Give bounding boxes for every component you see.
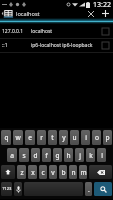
- button[interactable]: c: [39, 165, 47, 179]
- button[interactable]: u: [70, 130, 79, 145]
- button[interactable]: Shift: [1, 165, 15, 179]
- button[interactable]: Search: [94, 182, 112, 196]
- button[interactable]: w: [13, 130, 23, 145]
- button[interactable]: e: [25, 130, 35, 145]
- button[interactable]: a: [7, 148, 17, 162]
- button[interactable]: ?123: [1, 182, 12, 196]
- button[interactable]: Select localhost: [100, 26, 111, 37]
- staticText: d: [33, 151, 38, 160]
- staticText: h: [66, 151, 71, 160]
- button[interactable]: t: [48, 130, 57, 145]
- staticText: z: [20, 168, 24, 177]
- staticText: o: [95, 133, 99, 142]
- staticText: localhost: [16, 10, 40, 18]
- staticText: i: [85, 133, 87, 142]
- staticText: a: [10, 151, 14, 160]
- staticText: m: [80, 168, 87, 177]
- staticText: u: [72, 133, 77, 142]
- button[interactable]: p: [103, 130, 112, 145]
- button[interactable]: Select ip6-localhost ip6-loopback: [100, 40, 111, 51]
- staticText: localhost: [31, 28, 53, 35]
- button[interactable]: k: [86, 148, 95, 162]
- staticText: s: [22, 151, 26, 160]
- staticText: r: [40, 133, 43, 142]
- staticText: n: [71, 168, 76, 177]
- button[interactable]: Backspace: [89, 165, 112, 179]
- button[interactable]: 127.0.0.1: [0, 25, 113, 38]
- staticText: p: [105, 133, 110, 142]
- staticText: g: [55, 151, 60, 160]
- button[interactable]: m: [79, 165, 87, 179]
- button[interactable]: Clear query: [84, 9, 97, 18]
- button[interactable]: z: [17, 165, 26, 179]
- button[interactable]: i: [81, 130, 90, 145]
- button[interactable]: y: [59, 130, 68, 145]
- button[interactable]: Up: [0, 9, 14, 18]
- staticText: e: [28, 133, 32, 142]
- button[interactable]: b: [59, 165, 67, 179]
- button[interactable]: n: [69, 165, 77, 179]
- button[interactable]: Add entry: [99, 9, 112, 18]
- staticText: q: [4, 133, 9, 142]
- button[interactable]: x: [28, 165, 37, 179]
- staticText: ip6-localhost ip6-loopback: [31, 42, 93, 49]
- staticText: c: [41, 168, 45, 177]
- staticText: w: [15, 133, 21, 142]
- staticText: x: [31, 168, 35, 177]
- staticText: t: [51, 133, 54, 142]
- button[interactable]: l: [97, 148, 106, 162]
- staticText: v: [51, 168, 55, 177]
- staticText: 13:22: [93, 0, 111, 9]
- button[interactable]: Voice input: [14, 182, 22, 196]
- staticText: f: [45, 151, 48, 160]
- button[interactable]: f: [42, 148, 51, 162]
- staticText: ::1: [2, 42, 8, 49]
- button[interactable]: o: [92, 130, 101, 145]
- button[interactable]: j: [75, 148, 84, 162]
- button[interactable]: h: [64, 148, 73, 162]
- staticText: 127.0.0.1: [2, 28, 24, 35]
- button[interactable]: d: [31, 148, 40, 162]
- staticText: y: [62, 133, 66, 142]
- button[interactable]: .: [85, 182, 92, 196]
- staticText: j: [79, 151, 81, 160]
- button[interactable]: v: [49, 165, 57, 179]
- staticText: .: [88, 185, 90, 194]
- button[interactable]: r: [37, 130, 46, 145]
- button[interactable]: g: [53, 148, 62, 162]
- button[interactable]: ::1: [0, 39, 113, 52]
- staticText: k: [89, 151, 93, 160]
- staticText: ?123: [2, 186, 12, 192]
- staticText: b: [61, 168, 66, 177]
- staticText: l: [101, 151, 103, 160]
- button[interactable]: q: [1, 130, 11, 145]
- button[interactable]: s: [19, 148, 29, 162]
- button[interactable]: Space: [24, 182, 83, 196]
